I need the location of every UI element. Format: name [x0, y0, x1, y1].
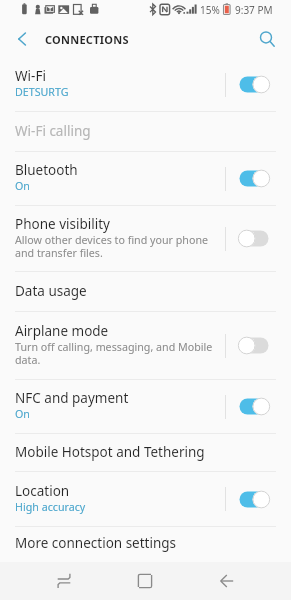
button[interactable]: Wi-Fi: [0, 58, 291, 111]
staticText: Location: [15, 482, 70, 500]
button[interactable]: NFC and payment switch: [226, 380, 291, 433]
staticText: CONNECTIONS: [45, 32, 129, 47]
staticText: NFC and payment: [15, 389, 129, 407]
button[interactable]: Airplane mode: [0, 312, 291, 379]
button[interactable]: Bluetooth: [0, 152, 291, 205]
staticText: 15%: [200, 3, 220, 17]
staticText: 9:37 PM: [235, 3, 273, 17]
button[interactable]: Location: [0, 472, 291, 526]
button[interactable]: More connection settings: [0, 527, 291, 561]
button[interactable]: Back: [204, 562, 250, 600]
staticText: Airplane mode: [15, 322, 109, 340]
staticText: Mobile Hotspot and Tethering: [15, 443, 205, 461]
staticText: On: [15, 407, 30, 422]
button[interactable]: Phone visibility: [0, 206, 291, 271]
button[interactable]: Wi-Fi calling: [0, 112, 291, 151]
button[interactable]: Data usage: [0, 272, 291, 311]
staticText: Data usage: [15, 282, 87, 300]
staticText: Allow other devices to find your phone a…: [15, 233, 209, 261]
button[interactable]: Mobile Hotspot and Tethering: [0, 434, 291, 471]
button[interactable]: Recent apps: [41, 562, 87, 600]
staticText: Bluetooth: [15, 161, 78, 179]
staticText: DETSURTG: [15, 85, 69, 100]
staticText: Phone visibility: [15, 215, 110, 233]
staticText: More connection settings: [15, 534, 177, 552]
button[interactable]: Wi-Fi switch: [226, 58, 291, 111]
staticText: Wi-Fi calling: [15, 122, 91, 140]
staticText: On: [15, 179, 30, 194]
button[interactable]: Home: [122, 562, 168, 600]
button[interactable]: NFC and payment: [0, 380, 291, 433]
button[interactable]: Search: [249, 20, 291, 58]
button[interactable]: Airplane mode switch: [226, 312, 291, 379]
button[interactable]: Bluetooth switch: [226, 152, 291, 205]
staticText: Wi-Fi: [15, 67, 46, 85]
staticText: High accuracy: [15, 500, 86, 515]
staticText: Turn off calling, messaging, and Mobile …: [15, 340, 213, 368]
button[interactable]: Phone visibility switch: [226, 206, 291, 271]
button[interactable]: Navigate up: [0, 20, 44, 58]
button[interactable]: Location switch: [226, 472, 291, 526]
